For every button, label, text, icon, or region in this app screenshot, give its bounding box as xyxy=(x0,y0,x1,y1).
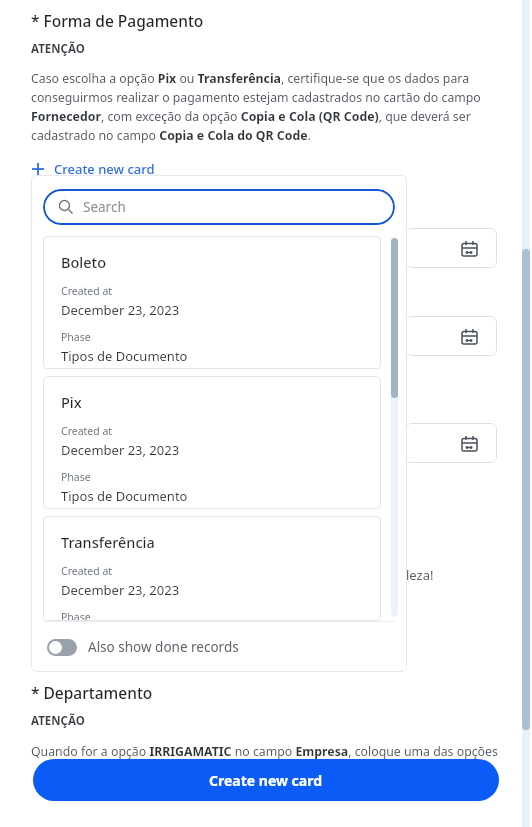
staticText: Create new card xyxy=(54,160,155,178)
button[interactable]: Transferência xyxy=(43,516,381,621)
staticText: Created at xyxy=(61,424,113,438)
staticText: Create new card xyxy=(209,771,323,790)
staticText: December 23, 2023 xyxy=(61,441,180,459)
staticText: leza! xyxy=(406,566,434,584)
staticText: Boleto xyxy=(61,252,106,272)
button[interactable]: Search xyxy=(43,189,395,225)
button[interactable]: Pix xyxy=(43,376,381,509)
staticText: Phase xyxy=(61,330,91,344)
button[interactable]: Pick date xyxy=(405,423,497,463)
staticText: December 23, 2023 xyxy=(61,581,180,599)
staticText: * Forma de Pagamento xyxy=(31,10,204,31)
button[interactable]: Also show done records xyxy=(31,622,407,672)
staticText: Quando for a opção IRRIGAMATIC no campo … xyxy=(31,743,498,760)
staticText: Tipos de Documento xyxy=(61,487,188,505)
staticText: December 23, 2023 xyxy=(61,301,180,319)
button[interactable]: Boleto xyxy=(43,236,381,369)
staticText: ATENÇÃO xyxy=(31,713,85,729)
button[interactable]: Pick date xyxy=(405,228,497,268)
staticText: ATENÇÃO xyxy=(31,41,85,57)
staticText: Tipos de Documento xyxy=(61,347,188,365)
staticText: Also show done records xyxy=(88,638,239,656)
staticText: Transferência xyxy=(61,532,155,552)
staticText: * Departamento xyxy=(31,682,153,703)
button[interactable]: Create new card xyxy=(31,158,155,180)
staticText: Search xyxy=(83,198,126,216)
staticText: Phase xyxy=(61,470,91,484)
button[interactable]: Create new card xyxy=(33,759,499,801)
staticText: Phase xyxy=(61,610,91,621)
staticText: Pix xyxy=(61,392,82,412)
staticText: Created at xyxy=(61,284,113,298)
button[interactable]: Pick date xyxy=(405,316,497,356)
staticText: Created at xyxy=(61,564,113,578)
staticText: Caso escolha a opção Pix ou Transferênci… xyxy=(31,70,510,144)
